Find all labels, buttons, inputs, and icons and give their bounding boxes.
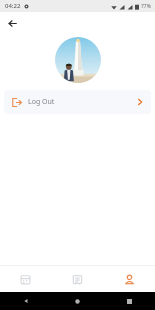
button[interactable]: Profile photo <box>55 37 101 83</box>
button[interactable]: Profile <box>103 266 155 292</box>
staticText: Log Out <box>28 97 55 107</box>
button[interactable]: Back <box>4 15 20 31</box>
button[interactable]: Log Out <box>4 90 151 114</box>
button[interactable]: Calendar <box>0 266 51 292</box>
staticText: 77% <box>141 3 151 10</box>
button[interactable]: Orders <box>51 266 103 292</box>
staticText: 04:22 <box>5 2 21 10</box>
